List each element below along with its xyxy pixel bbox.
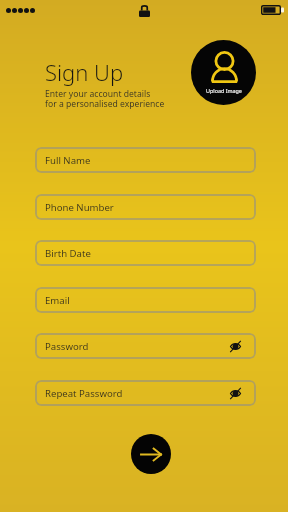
- button[interactable]: Repeat Password: [35, 380, 256, 406]
- staticText: Upload Image: [206, 87, 242, 94]
- button[interactable]: Email: [35, 287, 256, 313]
- staticText: Email: [45, 294, 70, 307]
- button[interactable]: Password: [35, 333, 256, 359]
- staticText: Repeat Password: [45, 387, 123, 400]
- staticText: Sign Up: [45, 57, 124, 87]
- button[interactable]: Next: [131, 434, 171, 474]
- button[interactable]: Birth Date: [35, 240, 256, 266]
- button[interactable]: Upload Image: [191, 40, 256, 105]
- button[interactable]: Full Name: [35, 147, 256, 173]
- button[interactable]: Show password: [229, 340, 242, 353]
- staticText: Birth Date: [45, 247, 91, 260]
- button[interactable]: Show password: [229, 387, 242, 400]
- staticText: Password: [45, 340, 89, 353]
- button[interactable]: Phone Number: [35, 194, 256, 220]
- staticText: Phone Number: [45, 201, 114, 214]
- staticText: Enter your account details for a persona…: [45, 88, 165, 110]
- staticText: Full Name: [45, 154, 91, 167]
